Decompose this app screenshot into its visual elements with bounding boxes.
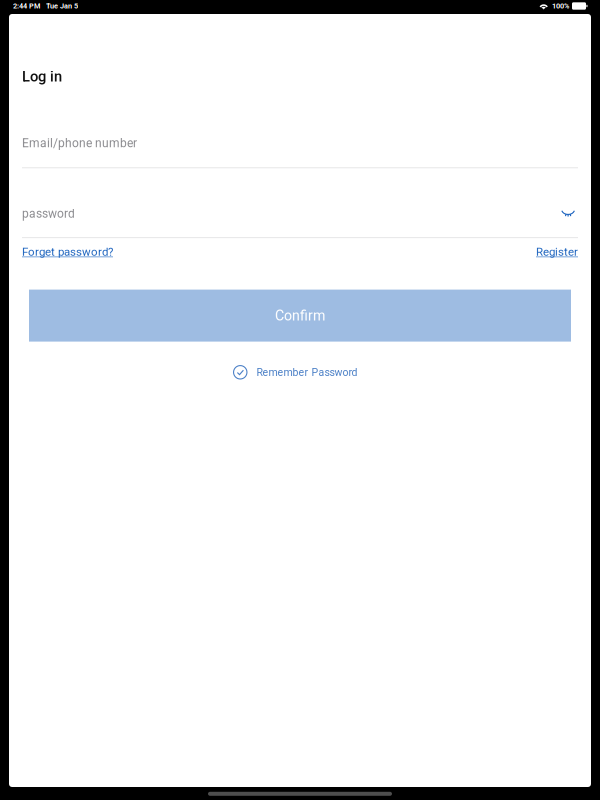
button[interactable]: Confirm (22, 290, 578, 342)
staticText: Tue Jan 5 (46, 2, 78, 10)
staticText: Register (536, 245, 578, 259)
button[interactable]: Forget password? (22, 245, 113, 259)
staticText: Email/phone number (22, 136, 137, 150)
staticText: Confirm (275, 307, 325, 324)
button[interactable]: Show password (558, 206, 578, 221)
button[interactable]: Register (536, 245, 578, 259)
staticText: 2:44 PM (13, 2, 40, 10)
staticText: Log in (22, 68, 62, 85)
button[interactable]: Remember Password (234, 363, 366, 382)
staticText: 100% (552, 2, 569, 10)
staticText: Forget password? (22, 245, 113, 259)
staticText: Remember Password (256, 366, 357, 378)
staticText: password (22, 207, 75, 221)
